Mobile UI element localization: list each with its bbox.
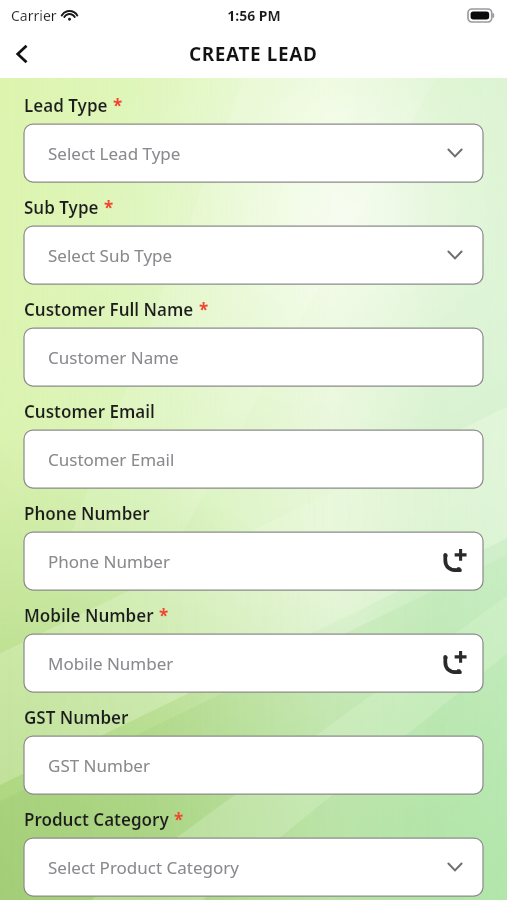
staticText: Mobile Number (24, 604, 154, 627)
staticText: Phone Number (48, 550, 443, 573)
button[interactable]: Sub Type (24, 226, 483, 284)
button[interactable]: Mobile Number (24, 634, 483, 692)
staticText: CREATE LEAD (189, 41, 318, 67)
button[interactable]: Product Category (24, 838, 483, 896)
staticText: Customer Email (48, 448, 465, 471)
staticText: Phone Number (24, 502, 150, 525)
staticText: * (113, 94, 123, 117)
staticText: Lead Type (24, 94, 108, 117)
staticText: GST Number (24, 706, 129, 729)
staticText: Product Category (24, 808, 169, 831)
staticText: * (159, 604, 169, 627)
staticText: * (104, 196, 114, 219)
staticText: Customer Full Name (24, 298, 194, 321)
staticText: Select Lead Type (48, 142, 445, 165)
staticText: * (199, 298, 209, 321)
staticText: Sub Type (24, 196, 99, 219)
button[interactable]: Customer Email (24, 430, 483, 488)
staticText: Select Product Category (48, 856, 445, 879)
staticText: GST Number (48, 754, 465, 777)
staticText: Customer Name (48, 346, 465, 369)
staticText: Carrier (11, 6, 57, 25)
button[interactable]: Phone Number (24, 532, 483, 590)
staticText: Customer Email (24, 400, 155, 423)
staticText: Select Sub Type (48, 244, 445, 267)
button[interactable]: Back (0, 31, 46, 77)
staticText: Mobile Number (48, 652, 443, 675)
button[interactable]: Customer Full Name (24, 328, 483, 386)
staticText: * (174, 808, 184, 831)
button[interactable]: Lead Type (24, 124, 483, 182)
staticText: 1:56 PM (227, 6, 281, 25)
button[interactable]: GST Number (24, 736, 483, 794)
